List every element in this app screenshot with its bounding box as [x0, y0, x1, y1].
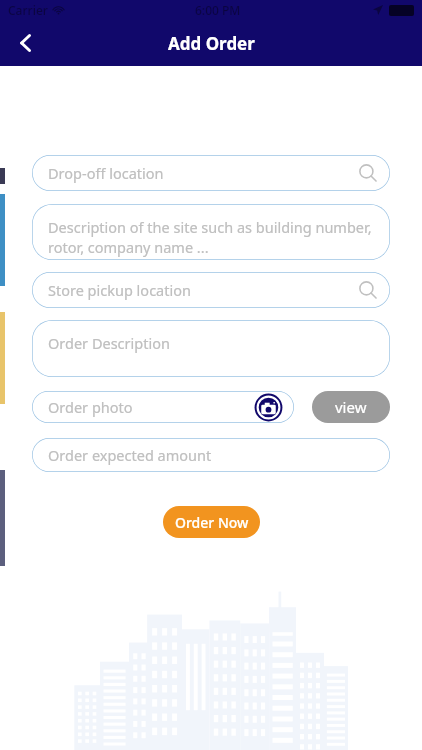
button[interactable]: Order expected amount: [32, 438, 390, 472]
staticText: Description of the site such as building…: [48, 217, 375, 257]
staticText: Add Order: [168, 32, 255, 55]
staticText: Order photo: [48, 397, 133, 417]
staticText: 6:00 PM: [195, 2, 241, 18]
staticText: Store pickup location: [48, 280, 191, 300]
button[interactable]: view: [312, 391, 390, 423]
button[interactable]: Back: [6, 23, 46, 63]
staticText: Order Description: [48, 333, 170, 353]
button[interactable]: Drop-off location: [32, 155, 390, 191]
button[interactable]: Order Now: [163, 506, 260, 538]
button[interactable]: Store pickup location: [32, 272, 390, 308]
staticText: Order expected amount: [48, 445, 212, 465]
button[interactable]: Order photo: [32, 391, 294, 423]
staticText: Order Now: [175, 513, 249, 532]
staticText: Drop-off location: [48, 163, 164, 183]
button[interactable]: Take order photo: [254, 393, 283, 422]
button[interactable]: Description of the site such as building…: [32, 204, 390, 260]
staticText: view: [335, 397, 367, 417]
staticText: Carrier: [8, 2, 48, 18]
button[interactable]: Order Description: [32, 320, 390, 377]
